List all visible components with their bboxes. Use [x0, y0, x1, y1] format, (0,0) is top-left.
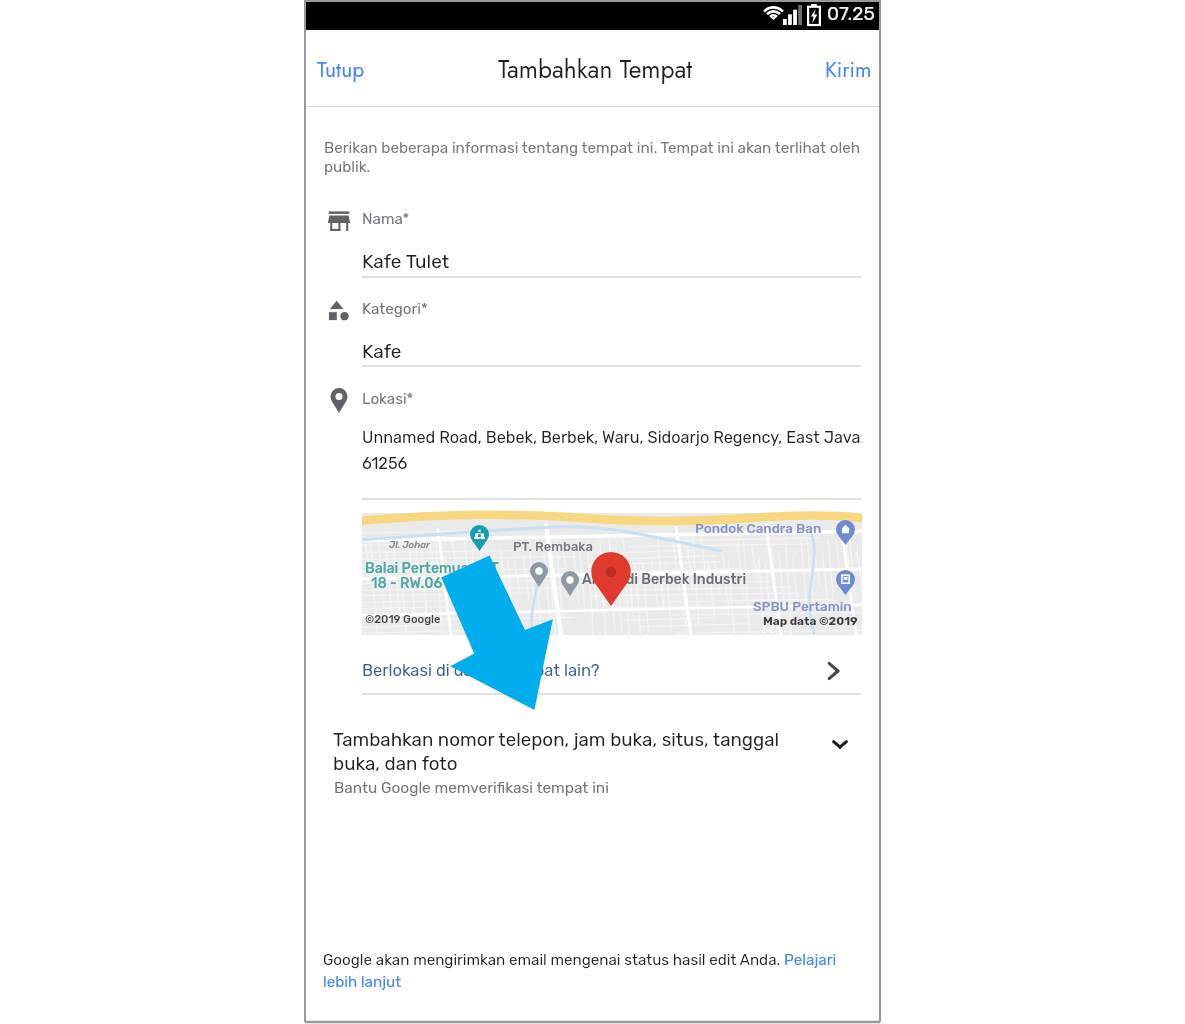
staticText: Berikan beberapa informasi tentang tempa…: [324, 139, 874, 176]
staticText: Alfamidi Berbek Industri: [582, 571, 747, 588]
staticText: SPBU Pertamin: [753, 598, 852, 614]
button[interactable]: Berlokasi di dalam tempat lain?: [362, 646, 861, 693]
staticText: Lokasi*: [362, 390, 414, 408]
staticText: Tambahkan Tempat: [498, 52, 693, 88]
other: Expand: [829, 734, 851, 756]
button[interactable]: Lokasi*: [317, 380, 861, 502]
button[interactable]: Tambahkan nomor telepon, jam buka, situs…: [317, 712, 866, 796]
staticText: Tambahkan nomor telepon, jam buka, situs…: [333, 728, 793, 775]
staticText: Berlokasi di dalam tempat lain?: [362, 661, 600, 681]
button[interactable]: Tutup: [305, 43, 377, 97]
staticText: Unnamed Road, Bebek, Berbek, Waru, Sidoa…: [362, 428, 877, 473]
other: Open: [825, 662, 843, 680]
staticText: Pondok Candra Ban: [695, 520, 822, 536]
staticText: 07.25: [827, 2, 875, 25]
staticText: Kirim: [825, 55, 872, 85]
staticText: Kategori*: [362, 300, 428, 318]
button[interactable]: Google akan mengirimkan email mengenai s…: [323, 951, 851, 999]
staticText: ©2019 Google: [365, 613, 441, 626]
staticText: Google akan mengirimkan email mengenai s…: [323, 951, 851, 991]
button[interactable]: Map preview: [362, 513, 862, 635]
staticText: 18 - RW.06: [371, 575, 443, 592]
staticText: Bantu Google memverifikasi tempat ini: [334, 779, 609, 797]
button[interactable]: Kirim: [813, 43, 884, 97]
button[interactable]: Kategori*: [317, 290, 861, 369]
staticText: Jl. Johar: [389, 539, 430, 550]
staticText: Kafe: [362, 340, 402, 363]
staticText: Nama*: [362, 210, 410, 228]
staticText: Map data ©2019: [763, 614, 858, 628]
staticText: PT. Rembaka: [513, 539, 593, 554]
staticText: Kafe Tulet: [362, 250, 450, 273]
staticText: Tutup: [317, 55, 365, 85]
staticText: Balai Pertemuan RT: [365, 560, 499, 577]
button[interactable]: Nama*: [317, 200, 861, 280]
